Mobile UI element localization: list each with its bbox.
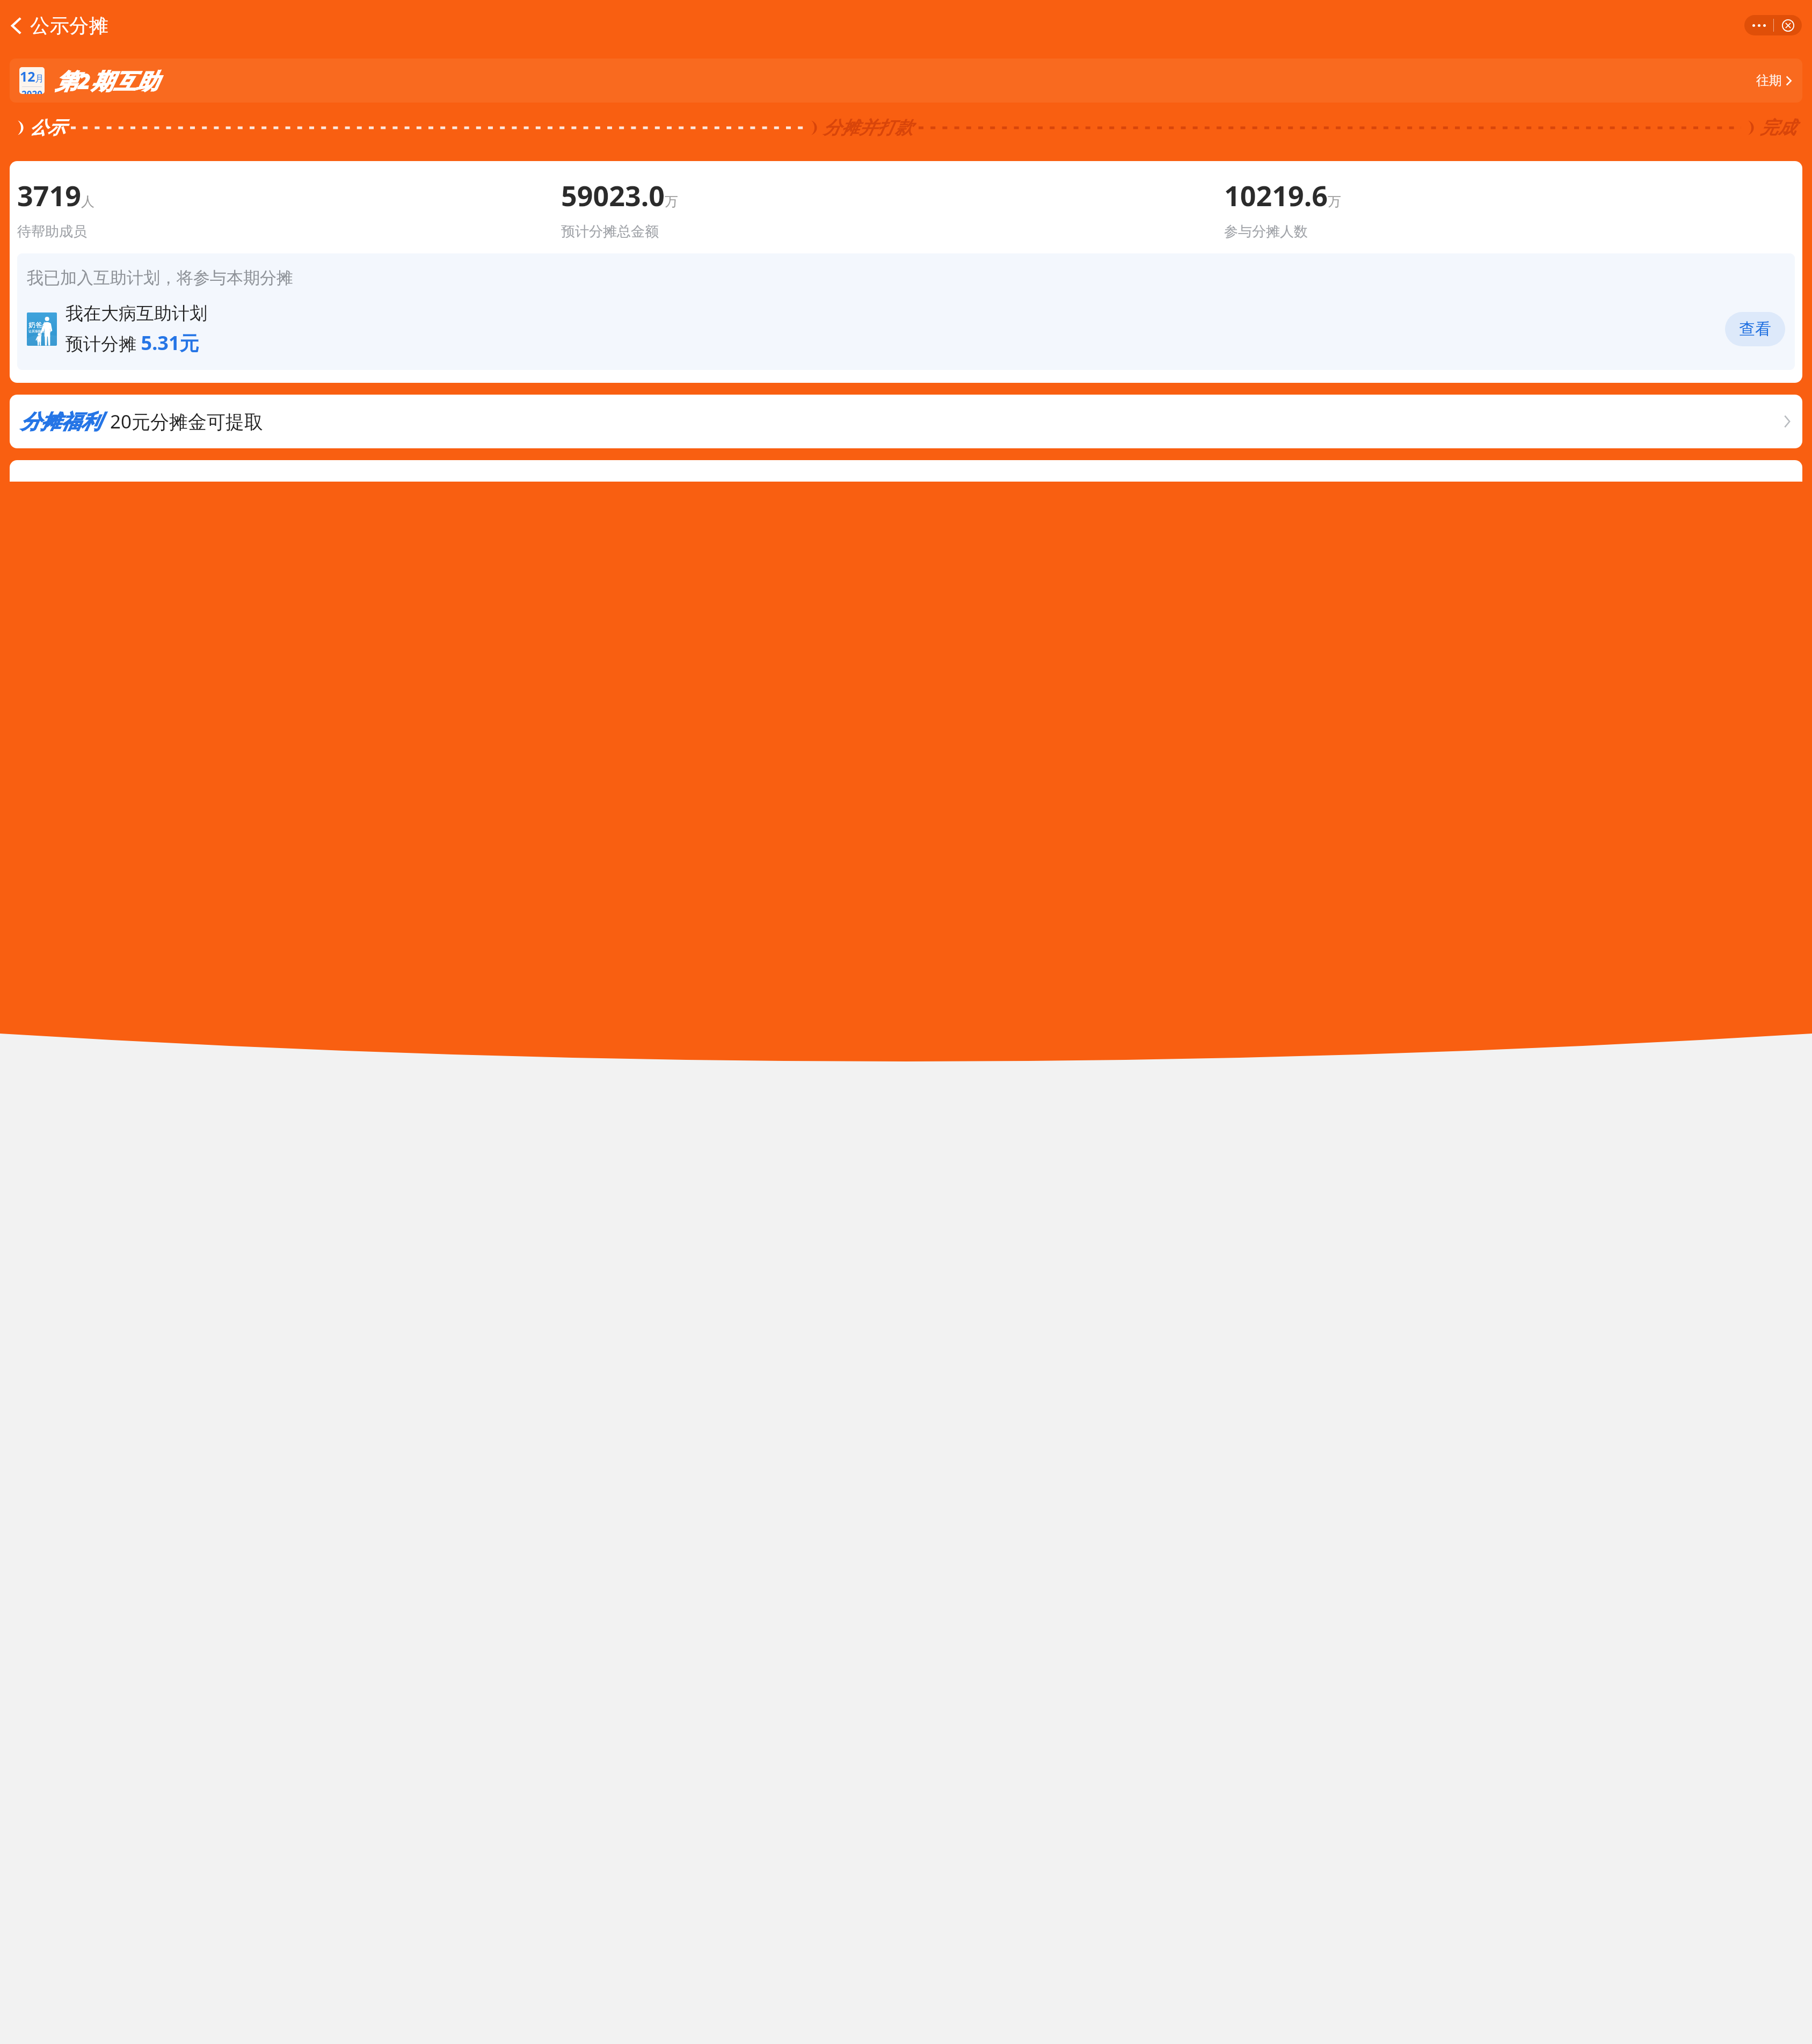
button[interactable]: 分摊福利 xyxy=(10,395,1802,448)
staticText: 待帮助成员 xyxy=(17,223,87,241)
staticText: 预计分摊 5.31元 xyxy=(66,330,199,356)
staticText: 完成 xyxy=(1760,117,1796,139)
staticText: 2020 xyxy=(21,88,42,94)
staticText: 分摊福利 xyxy=(20,409,101,434)
button[interactable]: 12月 xyxy=(10,59,1802,103)
staticText: 3719人 xyxy=(17,176,94,214)
staticText: 第2期互助 xyxy=(55,66,159,96)
staticText: 我在大病互助计划 xyxy=(66,302,207,325)
staticText: 公示 xyxy=(30,117,66,139)
button[interactable]: 查看 xyxy=(1725,312,1785,346)
staticText: 分摊并打款 xyxy=(823,117,913,139)
button[interactable]: More options xyxy=(1744,15,1773,35)
other: Open welfare details xyxy=(1784,415,1791,428)
staticText: 往期 xyxy=(1756,72,1782,89)
staticText: 59023.0万 xyxy=(561,176,679,214)
staticText: 奶爸保 xyxy=(28,321,49,329)
staticText: 20元分摊金可提取 xyxy=(110,409,264,434)
staticText: 查看 xyxy=(1739,319,1771,339)
staticText: 参与分摊人数 xyxy=(1224,223,1308,241)
staticText: 10219.6万 xyxy=(1224,176,1342,214)
staticText: 12月 xyxy=(20,67,44,85)
button[interactable]: 奶爸保 xyxy=(27,302,1785,356)
button[interactable]: Back xyxy=(10,13,113,38)
staticText: 我已加入互助计划，将参与本期分摊 xyxy=(27,267,293,288)
staticText: 公示分摊 xyxy=(30,13,108,38)
button[interactable]: Close xyxy=(1774,15,1802,35)
staticText: 让买保险更简单 xyxy=(28,329,51,333)
other: Back xyxy=(10,17,23,35)
staticText: 预计分摊总金额 xyxy=(561,223,659,241)
